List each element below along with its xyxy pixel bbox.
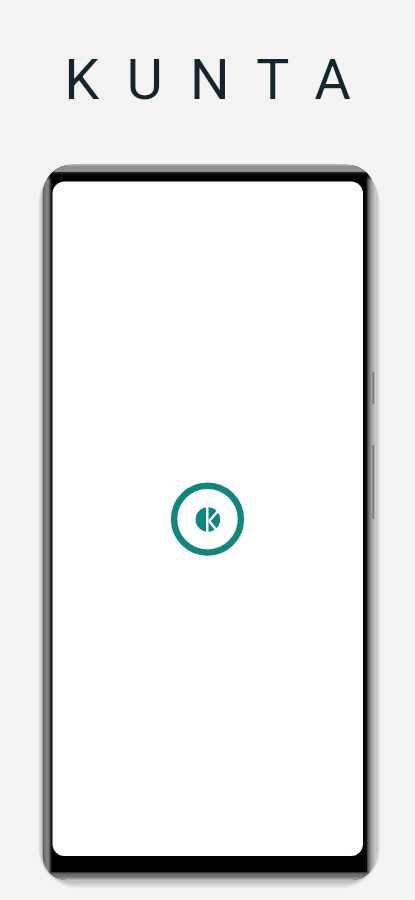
button[interactable]: Kunta app logo	[171, 483, 243, 555]
button[interactable]: KUNTA	[64, 47, 378, 113]
